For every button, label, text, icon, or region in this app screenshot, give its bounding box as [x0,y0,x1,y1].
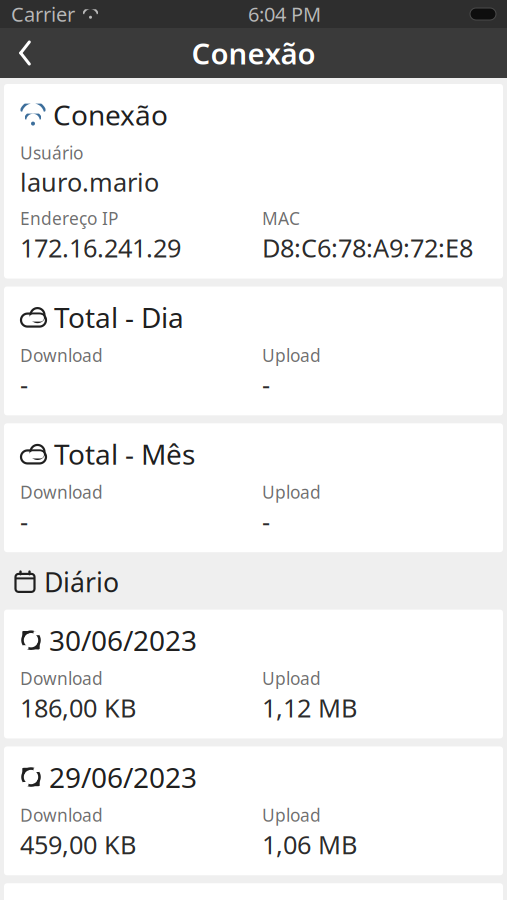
staticText: Total - Mês [54,435,195,472]
staticText: - [20,368,28,401]
staticText: 6:04 PM [248,1,321,27]
staticText: Download [20,667,103,690]
button[interactable]: 29/06/2023 [0,746,507,875]
button[interactable]: Total - Dia [0,286,507,415]
staticText: Upload [262,480,321,503]
staticText: D8:C6:78:A9:72:E8 [262,231,473,264]
staticText: 1,06 MB [262,828,357,861]
staticText: Download [20,344,103,367]
staticText: Carrier [11,1,75,27]
staticText: - [20,504,28,538]
staticText: MAC [262,207,300,230]
staticText: Usuário [20,141,83,164]
staticText: 186,00 KB [20,691,136,724]
staticText: Conexão [191,33,315,72]
button[interactable]: 30/06/2023 [0,610,507,738]
staticText: Upload [262,344,321,367]
staticText: Download [20,480,103,503]
button[interactable]: Conexão [0,84,507,278]
staticText: 1,12 MB [262,691,357,724]
staticText: lauro.mario [20,165,159,199]
staticText: 29/06/2023 [49,758,197,796]
button[interactable]: Total - Mês [0,423,507,552]
staticText: Total - Dia [54,298,184,336]
staticText: Endereço IP [20,207,118,230]
staticText: - [262,368,270,401]
button[interactable]: Back [0,33,48,73]
staticText: - [262,504,270,538]
staticText: Conexão [53,96,168,133]
staticText: Upload [262,667,321,690]
staticText: Diário [44,564,119,600]
staticText: Upload [262,804,321,827]
staticText: 459,00 KB [20,828,136,861]
staticText: 30/06/2023 [49,622,197,659]
staticText: Download [20,804,103,827]
staticText: 172.16.241.29 [20,231,181,264]
